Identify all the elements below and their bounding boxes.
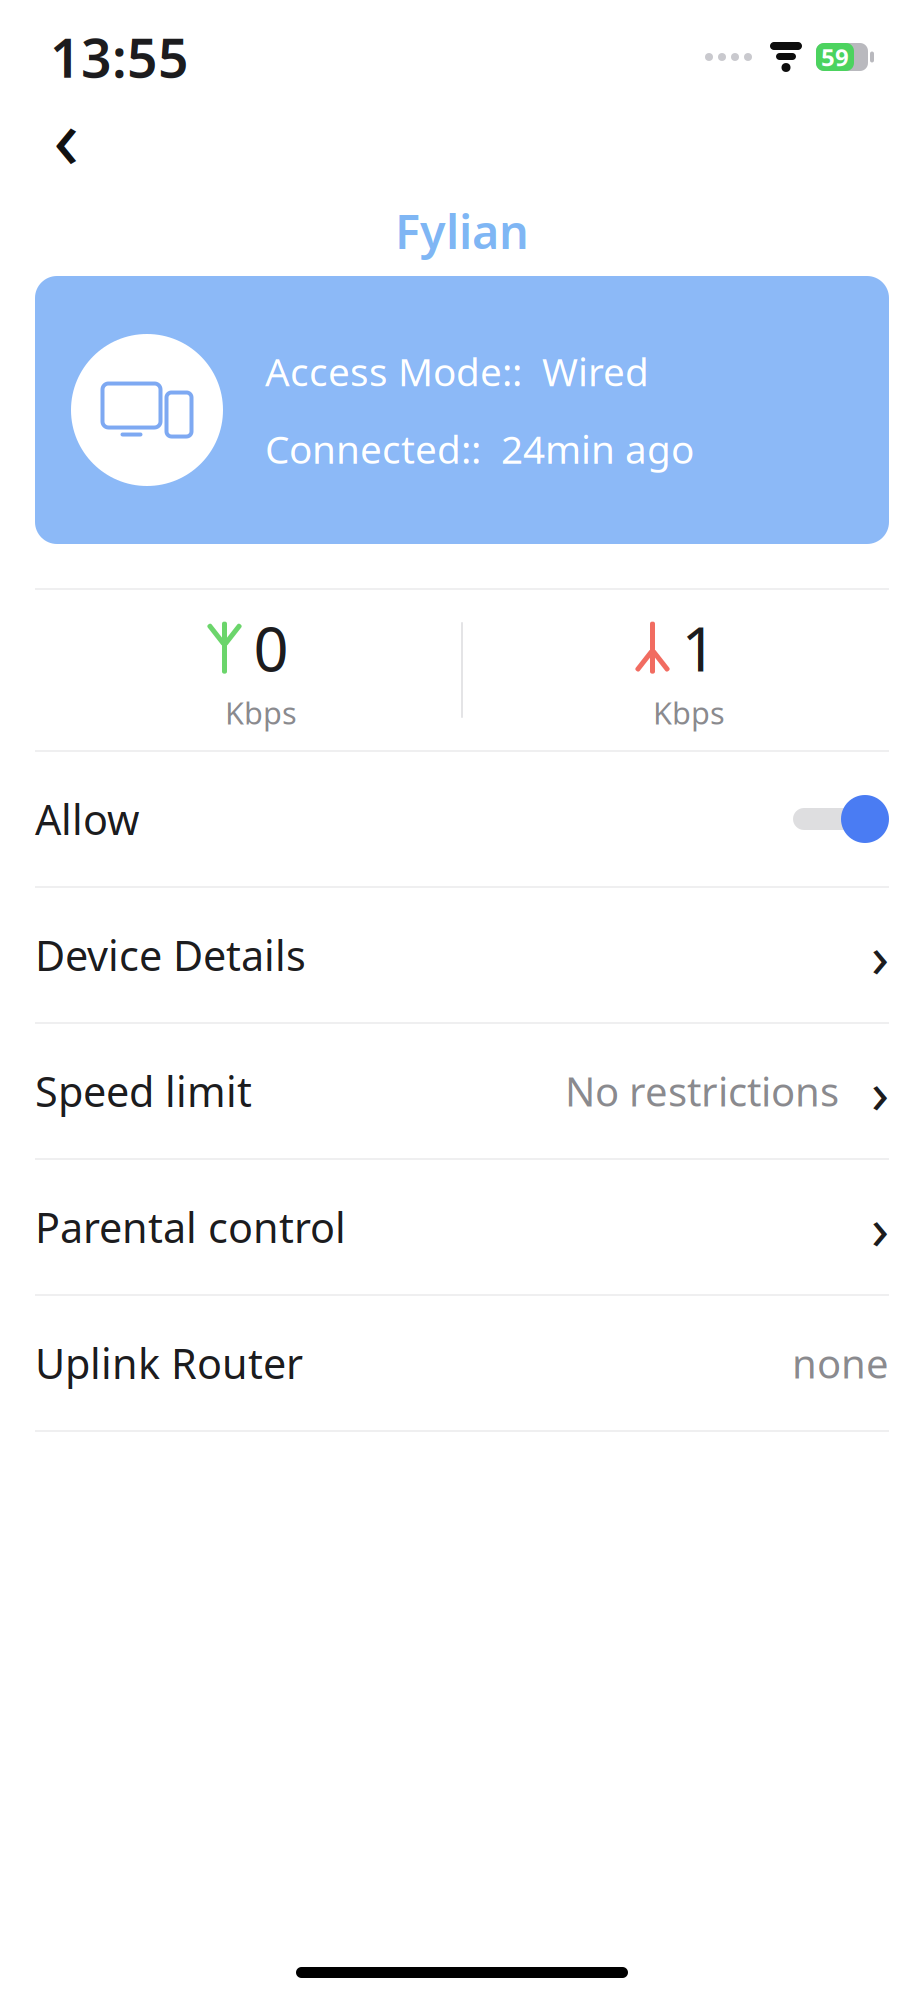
staticText: Kbps [225,692,297,733]
staticText: none [792,1336,889,1389]
staticText: Parental control [35,1200,346,1254]
staticText: › [871,916,889,994]
staticText: No restrictions [565,1064,839,1117]
button[interactable]: Back [30,100,102,172]
staticText: 13:55 [50,22,189,92]
button[interactable]: Parental control [35,1160,889,1294]
button[interactable]: Speed limit [35,1024,889,1158]
staticText: 0 [253,607,288,688]
staticText: Device Details [35,928,306,982]
staticText: Speed limit [35,1064,252,1118]
staticText: 59 [821,41,849,73]
staticText: Fylian [395,200,529,262]
staticText: › [871,1052,889,1130]
staticText: Access Mode:: Wired [265,346,649,397]
staticText: ‹ [53,79,79,193]
button[interactable]: Uplink Router [35,1296,889,1430]
staticText: Allow [35,792,139,846]
staticText: 1 [681,607,716,688]
staticText: › [871,1188,889,1266]
staticText: Uplink Router [35,1336,303,1390]
button[interactable]: Device Details [35,888,889,1022]
staticText: Connected:: 24min ago [265,423,694,474]
staticText: Kbps [653,692,725,733]
button[interactable]: Allow [35,752,889,886]
